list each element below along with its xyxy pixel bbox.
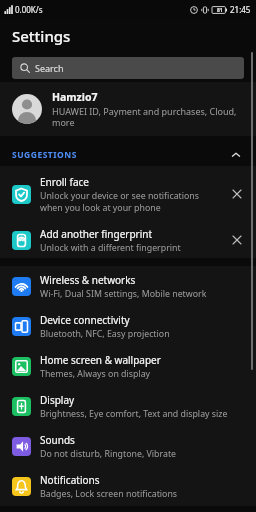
- staticText: Settings: [12, 26, 71, 46]
- staticText: Bluetooth, NFC, Easy projection: [40, 328, 170, 340]
- staticText: Add another fingerprint: [40, 227, 153, 241]
- button[interactable]: Search: [12, 57, 244, 79]
- button[interactable]: Notifications: [0, 466, 256, 506]
- staticText: Home screen & wallpaper: [40, 353, 161, 367]
- button[interactable]: Dismiss Enroll face: [230, 187, 244, 201]
- staticText: Unlock with a different fingerprint: [40, 242, 181, 254]
- staticText: SUGGESTIONS: [12, 149, 77, 161]
- staticText: Display: [40, 393, 75, 407]
- button[interactable]: Sounds: [0, 426, 256, 466]
- staticText: Badges, Lock screen notifications: [40, 488, 178, 500]
- staticText: Enroll face: [40, 175, 89, 189]
- staticText: Brightness, Eye comfort, Text and displa…: [40, 408, 228, 420]
- button[interactable]: Device connectivity: [0, 306, 256, 346]
- button[interactable]: SUGGESTIONS: [0, 143, 256, 166]
- staticText: Wireless & networks: [40, 273, 136, 287]
- staticText: Notifications: [40, 473, 100, 487]
- staticText: HUAWEI ID, Payment and purchases, Cloud,…: [52, 105, 244, 128]
- staticText: Hamzio7: [52, 90, 98, 104]
- staticText: Themes, Always on display: [40, 368, 151, 380]
- button[interactable]: Wireless & networks: [0, 266, 256, 306]
- staticText: Do not disturb, Ringtone, Vibrate: [40, 448, 177, 460]
- staticText: 81: [217, 7, 223, 14]
- button[interactable]: Enroll face: [0, 166, 256, 222]
- staticText: Sounds: [40, 433, 75, 447]
- staticText: 0.00K/s: [15, 4, 43, 15]
- button[interactable]: Add another fingerprint: [0, 222, 256, 258]
- staticText: Wi-Fi, Dual SIM settings, Mobile network: [40, 288, 207, 300]
- button[interactable]: Dismiss Add another fingerprint: [230, 233, 244, 247]
- button[interactable]: Home screen & wallpaper: [0, 346, 256, 386]
- staticText: Unlock your device or see notifications: [40, 190, 199, 202]
- button[interactable]: Display: [0, 386, 256, 426]
- staticText: Search: [35, 62, 64, 74]
- staticText: Device connectivity: [40, 313, 130, 327]
- button[interactable]: Hamzio7: [0, 82, 256, 136]
- staticText: 21:45: [230, 4, 251, 15]
- other: Collapse suggestions: [230, 149, 242, 161]
- staticText: when you look at your phone: [40, 202, 161, 214]
